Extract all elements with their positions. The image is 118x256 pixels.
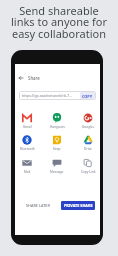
button[interactable]: Back [15,64,100,91]
staticText: COPY [82,94,93,99]
other: Back [19,76,23,80]
staticText: Drive [84,147,92,151]
staticText: Keep [53,147,61,151]
staticText: SHARE LATER [26,203,50,208]
button[interactable]: Bluetooth [14,135,40,151]
button[interactable]: https://go.aaa/network/rb.7... [19,91,96,100]
staticText: Gmail [23,125,32,129]
button[interactable]: Gmail [14,113,40,129]
staticText: https://go.aaa/network/rb.7... [22,93,73,98]
staticText: Mail [24,170,31,174]
button[interactable]: Message [44,158,70,174]
button[interactable]: PRIVATE SHARE [61,201,95,210]
button[interactable]: COPY [80,92,95,100]
staticText: Copy Link [81,170,96,174]
button[interactable]: Copy Link [75,158,101,174]
staticText: Hangouts [50,125,65,129]
staticText: PRIVATE SHARE [64,203,93,208]
button[interactable]: Keep [44,135,70,151]
staticText: Bluetooth [20,147,35,151]
button[interactable]: Drive [75,135,101,151]
button[interactable]: Google+ [75,113,101,129]
button[interactable]: Mail [14,158,40,174]
button[interactable]: SHARE LATER [24,201,52,210]
button[interactable]: Hangouts [44,113,70,129]
staticText: Share [28,75,40,81]
staticText: Send shareable links to anyone for easy … [0,3,118,41]
staticText: Google+ [82,125,95,129]
staticText: Message [50,170,64,174]
